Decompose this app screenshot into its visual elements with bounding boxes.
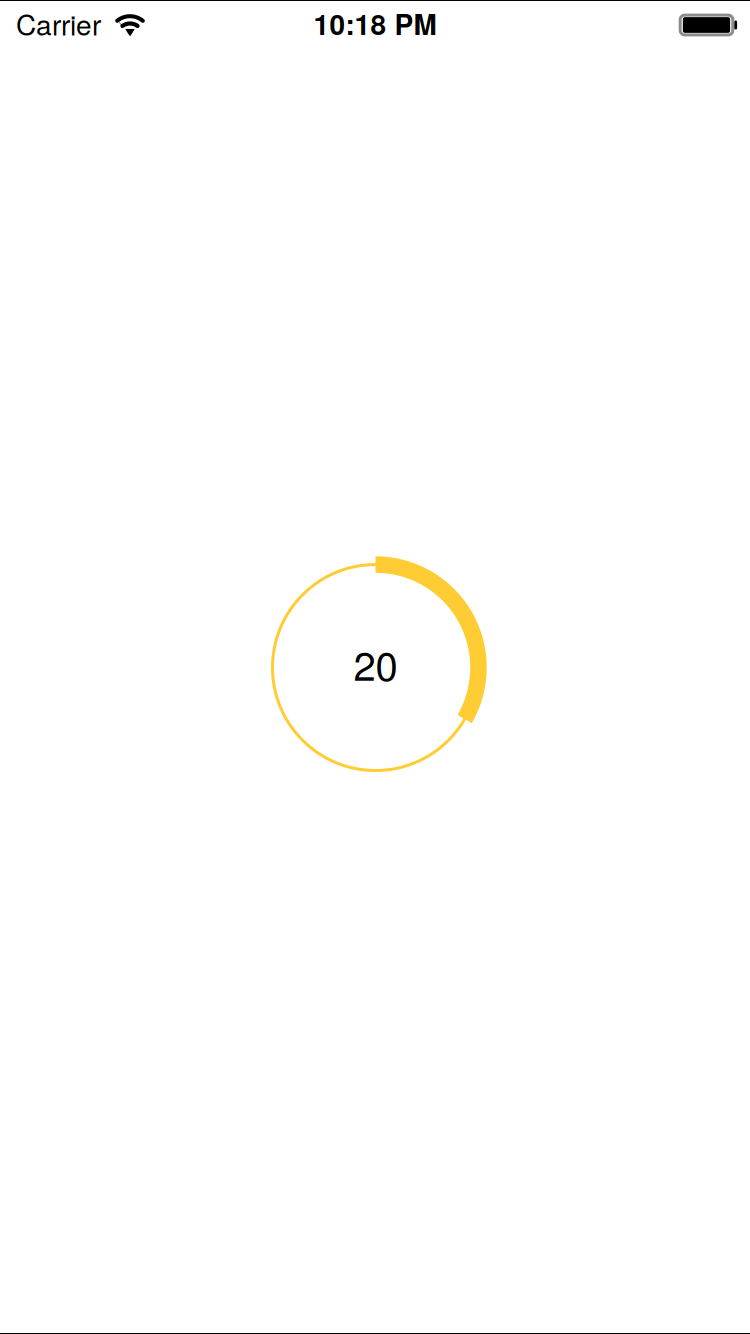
staticText: 20 xyxy=(353,635,397,692)
staticText: Carrier xyxy=(16,3,101,44)
staticText: 10:18 PM xyxy=(313,3,436,44)
button[interactable]: Timer, 20 seconds remaining xyxy=(263,555,488,780)
